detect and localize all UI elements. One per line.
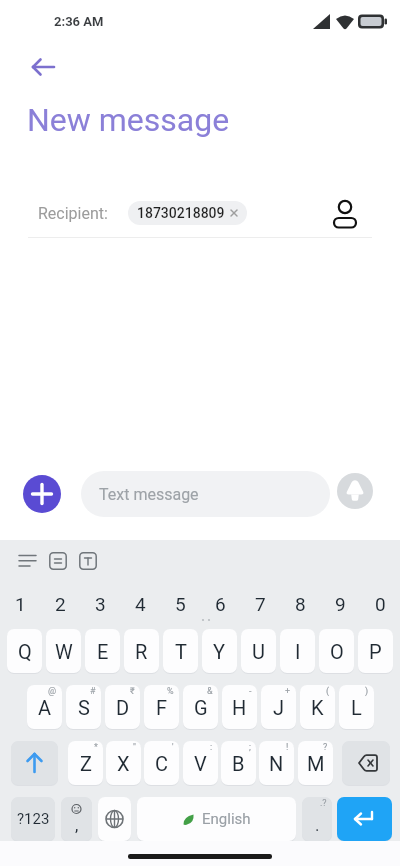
button[interactable]: F bbox=[144, 685, 179, 729]
button[interactable]: W bbox=[46, 629, 81, 673]
staticText: C bbox=[155, 752, 169, 775]
button[interactable]: C bbox=[144, 741, 179, 785]
staticText: 2:36 AM bbox=[54, 14, 104, 29]
staticText: Z bbox=[80, 752, 92, 775]
staticText: E bbox=[97, 640, 109, 663]
button[interactable] bbox=[11, 741, 58, 785]
button[interactable]: 2 bbox=[40, 584, 80, 624]
staticText: P bbox=[369, 640, 382, 663]
button[interactable]: 0 bbox=[360, 584, 400, 624]
staticText: ?123 bbox=[17, 810, 50, 828]
button[interactable]: U bbox=[241, 629, 276, 673]
staticText: K bbox=[311, 696, 324, 719]
button[interactable]: O bbox=[319, 629, 354, 673]
staticText: Q bbox=[18, 640, 32, 663]
staticText: O bbox=[330, 640, 344, 663]
button[interactable]: J bbox=[261, 685, 296, 729]
button[interactable]: Text message bbox=[81, 471, 330, 517]
staticText: L bbox=[351, 696, 362, 719]
staticText: , bbox=[75, 815, 79, 835]
staticText: N bbox=[269, 752, 284, 775]
staticText: * bbox=[94, 742, 98, 753]
button[interactable]: 7 bbox=[240, 584, 280, 624]
staticText: ( bbox=[326, 686, 330, 697]
button[interactable]: Z bbox=[68, 741, 103, 785]
button[interactable] bbox=[24, 51, 62, 83]
staticText: 0 bbox=[375, 593, 386, 615]
button[interactable]: 5 bbox=[160, 584, 200, 624]
button[interactable]: S bbox=[66, 685, 101, 729]
button[interactable]: E bbox=[85, 629, 120, 673]
button[interactable]: A bbox=[27, 685, 62, 729]
button[interactable] bbox=[98, 797, 131, 841]
button[interactable]: H bbox=[222, 685, 257, 729]
staticText: : bbox=[210, 742, 213, 753]
button[interactable]: N bbox=[259, 741, 294, 785]
staticText: T bbox=[175, 640, 187, 663]
button[interactable]: , bbox=[61, 797, 92, 841]
button[interactable] bbox=[337, 797, 392, 841]
staticText: " bbox=[133, 742, 136, 753]
staticText: ' bbox=[172, 742, 174, 753]
staticText: J bbox=[273, 696, 285, 719]
staticText: Y bbox=[213, 640, 226, 663]
staticText: V bbox=[194, 752, 207, 775]
button[interactable]: 18730218809 bbox=[128, 201, 247, 225]
button[interactable]: T bbox=[163, 629, 198, 673]
staticText: 4 bbox=[135, 593, 146, 615]
staticText: S bbox=[78, 696, 90, 719]
staticText: 6 bbox=[215, 593, 226, 615]
staticText: 9 bbox=[335, 593, 346, 615]
button[interactable]: English bbox=[137, 797, 296, 841]
staticText: U bbox=[252, 640, 265, 663]
button[interactable]: V bbox=[183, 741, 218, 785]
staticText: 2 bbox=[55, 593, 66, 615]
staticText: 8 bbox=[295, 593, 306, 615]
staticText: W bbox=[55, 640, 73, 663]
staticText: 3 bbox=[95, 593, 106, 615]
staticText: 7 bbox=[255, 593, 266, 615]
staticText: 5 bbox=[175, 593, 186, 615]
button[interactable]: .? bbox=[302, 797, 332, 841]
staticText: D bbox=[116, 696, 130, 719]
button[interactable]: P bbox=[358, 629, 393, 673]
button[interactable]: 4 bbox=[120, 584, 160, 624]
button[interactable]: I bbox=[280, 629, 315, 673]
staticText: - bbox=[249, 686, 252, 697]
button[interactable]: X bbox=[106, 741, 141, 785]
button[interactable]: 9 bbox=[320, 584, 360, 624]
button[interactable]: 8 bbox=[280, 584, 320, 624]
button[interactable]: L bbox=[339, 685, 374, 729]
button[interactable]: 3 bbox=[80, 584, 120, 624]
button[interactable]: 6 bbox=[200, 584, 240, 624]
button[interactable] bbox=[342, 741, 390, 785]
staticText: F bbox=[156, 696, 168, 719]
button[interactable]: B bbox=[221, 741, 256, 785]
staticText: Recipient: bbox=[38, 204, 108, 223]
button[interactable]: Y bbox=[202, 629, 237, 673]
button[interactable]: D bbox=[105, 685, 140, 729]
staticText: A bbox=[38, 696, 52, 719]
staticText: ? bbox=[323, 742, 328, 753]
button[interactable] bbox=[328, 196, 362, 232]
staticText: . bbox=[315, 815, 320, 835]
staticText: ; bbox=[249, 742, 251, 753]
staticText: R bbox=[135, 640, 148, 663]
button[interactable]: R bbox=[124, 629, 159, 673]
staticText: X bbox=[117, 752, 130, 775]
button[interactable] bbox=[23, 475, 61, 513]
staticText: @ bbox=[48, 686, 57, 697]
button[interactable]: ?123 bbox=[11, 797, 55, 841]
button[interactable]: K bbox=[300, 685, 335, 729]
staticText: + bbox=[285, 686, 291, 697]
button[interactable]: M bbox=[298, 741, 333, 785]
staticText: B bbox=[232, 752, 245, 775]
button[interactable]: Q bbox=[7, 629, 42, 673]
staticText: % bbox=[167, 686, 174, 697]
button[interactable]: 1 bbox=[0, 584, 40, 624]
staticText: 1 bbox=[15, 593, 26, 615]
button[interactable] bbox=[337, 473, 373, 509]
staticText: English bbox=[202, 810, 251, 828]
staticText: New message bbox=[27, 101, 230, 139]
button[interactable]: G bbox=[183, 685, 218, 729]
